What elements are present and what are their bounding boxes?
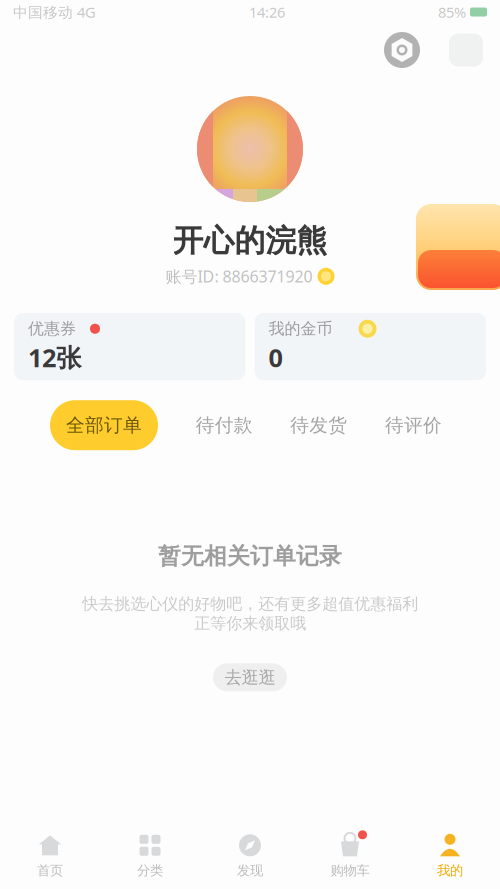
staticText: 账号ID: 8866371920 bbox=[165, 266, 312, 287]
staticText: 中国移动 4G bbox=[13, 2, 96, 22]
staticText: 首页 bbox=[37, 862, 63, 879]
button[interactable]: 首页 bbox=[0, 823, 100, 889]
button[interactable]: 全部订单 bbox=[50, 400, 158, 450]
staticText: 开心的浣熊 bbox=[172, 222, 327, 260]
staticText: 我的金币 bbox=[268, 319, 332, 339]
button[interactable]: Messages bbox=[444, 28, 488, 72]
button[interactable]: Promotion bbox=[416, 204, 500, 290]
staticText: 去逛逛 bbox=[224, 667, 275, 688]
button[interactable]: 我的 bbox=[400, 823, 500, 889]
staticText: 分类 bbox=[137, 862, 163, 879]
staticText: 优惠券 bbox=[28, 319, 76, 339]
staticText: 发现 bbox=[237, 862, 263, 879]
staticText: 12张 bbox=[28, 341, 81, 374]
staticText: 暂无相关订单记录 bbox=[158, 542, 342, 570]
staticText: 待发货 bbox=[290, 414, 347, 437]
button[interactable]: 我的金币 bbox=[254, 313, 486, 380]
button[interactable]: 待付款 bbox=[196, 400, 253, 450]
staticText: 购物车 bbox=[330, 862, 369, 879]
button[interactable]: 分类 bbox=[100, 823, 200, 889]
button[interactable]: 发现 bbox=[200, 823, 300, 889]
button[interactable]: 去逛逛 bbox=[213, 663, 287, 691]
staticText: 待评价 bbox=[385, 414, 442, 437]
staticText: 全部订单 bbox=[66, 414, 142, 437]
staticText: 85% bbox=[438, 2, 466, 22]
staticText: 待付款 bbox=[196, 414, 253, 437]
staticText: 14:26 bbox=[249, 2, 285, 22]
button[interactable]: 优惠券 bbox=[14, 313, 245, 380]
button[interactable]: 待发货 bbox=[290, 400, 347, 450]
staticText: 0 bbox=[268, 341, 282, 374]
staticText: 快去挑选心仪的好物吧，还有更多超值优惠福利 正等你来领取哦 bbox=[82, 594, 418, 633]
button[interactable]: Settings bbox=[380, 28, 424, 72]
button[interactable]: 待评价 bbox=[385, 400, 442, 450]
staticText: 我的 bbox=[437, 862, 463, 879]
button[interactable]: 购物车 bbox=[300, 823, 400, 889]
